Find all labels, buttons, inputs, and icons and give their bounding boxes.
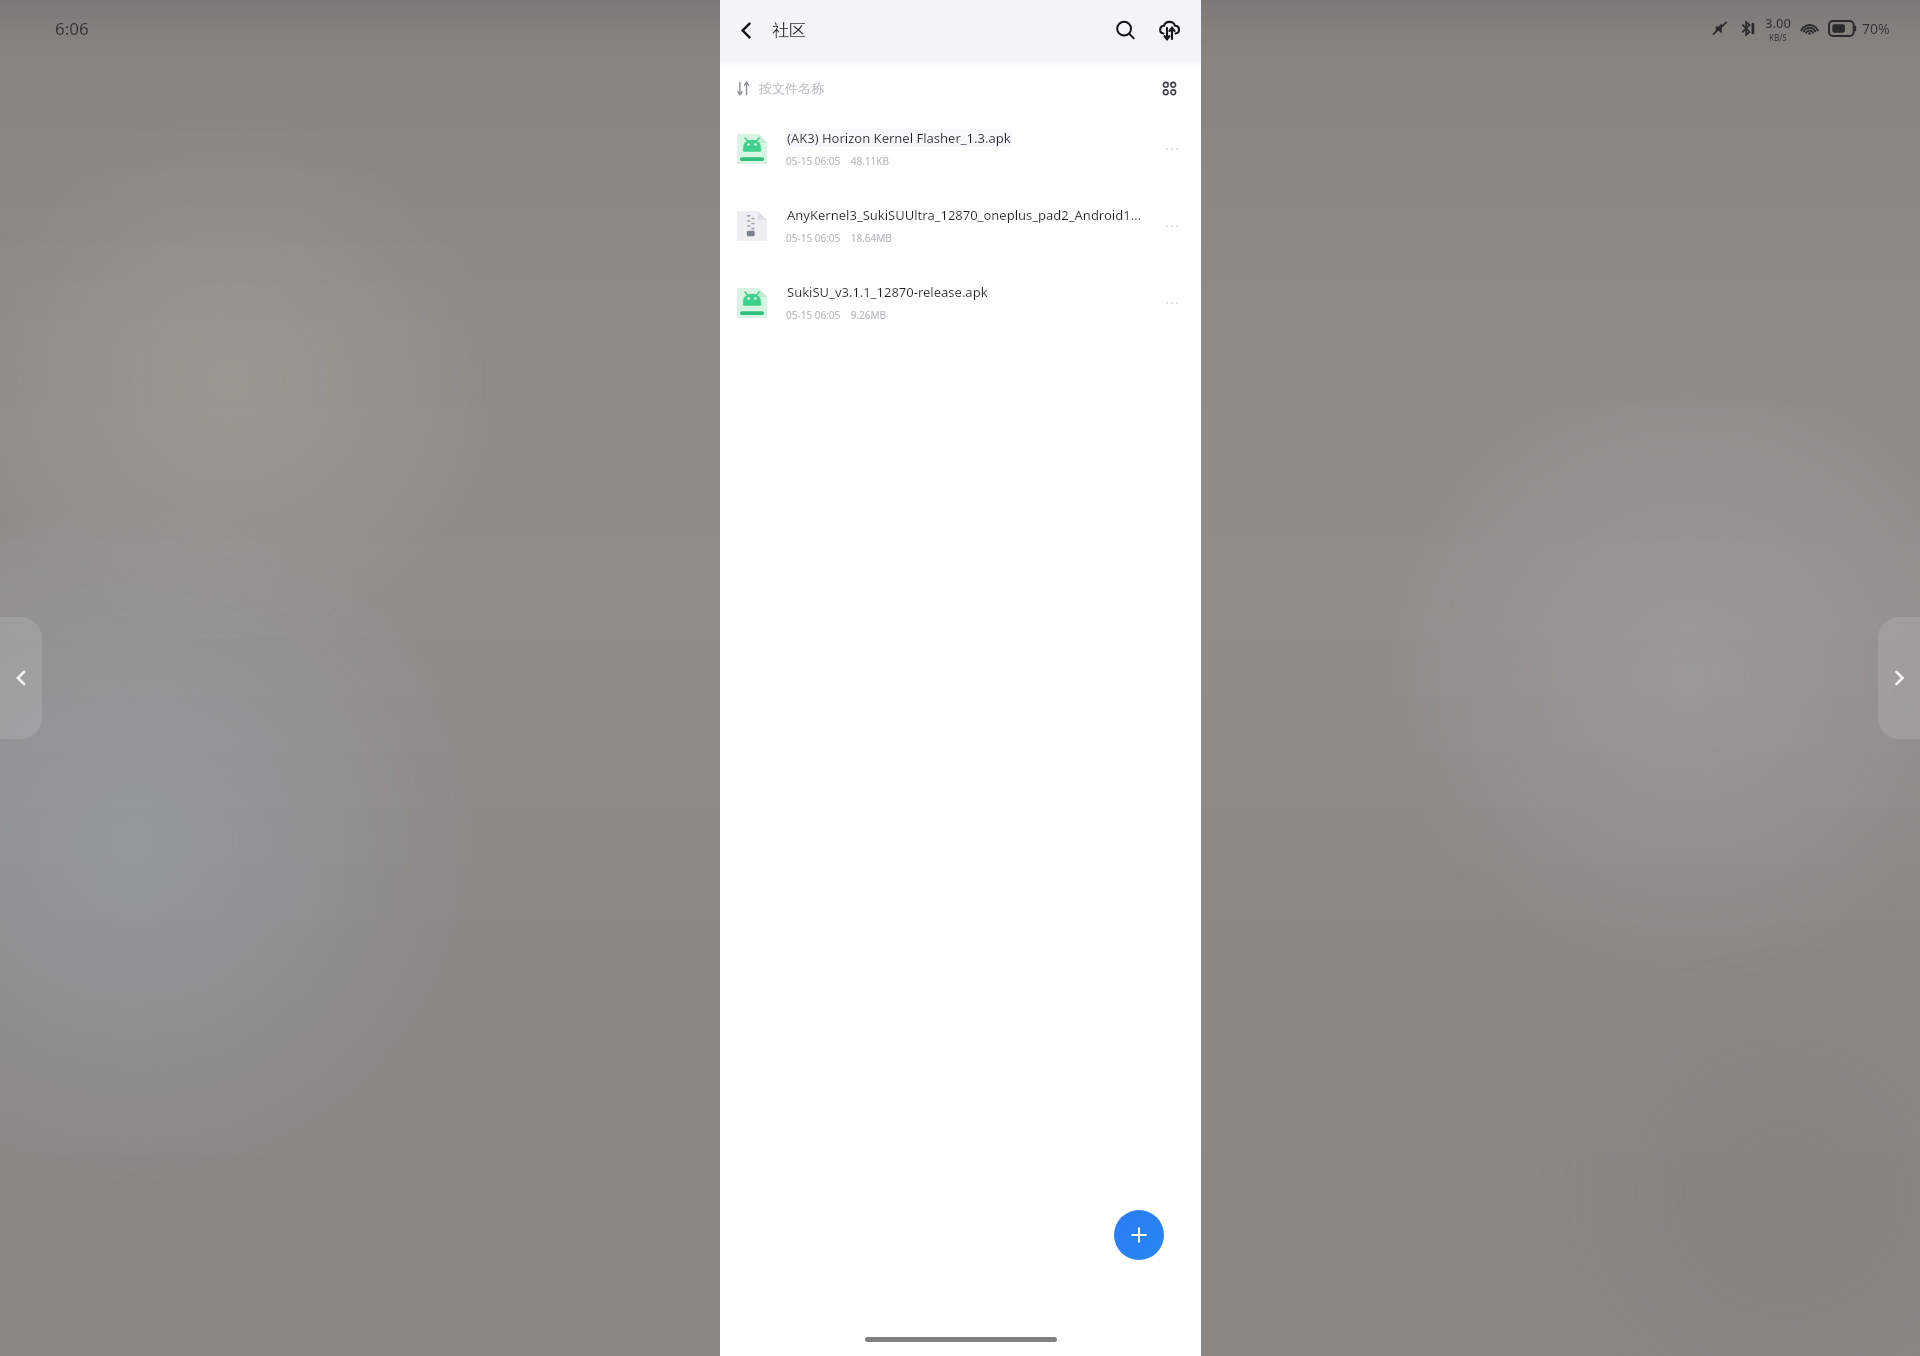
button[interactable]: (AK3) Horizon Kernel Flasher_1.3.apk (720, 110, 1201, 187)
staticText: 70% (1862, 19, 1890, 38)
button[interactable]: Back (0, 617, 42, 739)
staticText: SukiSU_v3.1.1_12870-release.apk (787, 283, 988, 301)
staticText: KB/S (1769, 32, 1787, 43)
button[interactable]: More options (1155, 286, 1189, 320)
button[interactable]: More options (1155, 209, 1189, 243)
staticText: 3.00 (1765, 14, 1791, 32)
button[interactable]: Transfers (1147, 8, 1191, 52)
staticText: 按文件名称 (759, 80, 824, 96)
staticText: (AK3) Horizon Kernel Flasher_1.3.apk (787, 129, 1011, 147)
button[interactable]: More options (1155, 132, 1189, 166)
staticText: 05-15 06:05 48.11KB (786, 154, 889, 168)
staticText: 社区 (772, 20, 806, 41)
staticText: 05-15 06:05 18.64MB (786, 231, 892, 245)
staticText: 6:06 (55, 17, 89, 40)
button[interactable]: SukiSU_v3.1.1_12870-release.apk (720, 264, 1201, 341)
button[interactable]: Back (726, 10, 766, 50)
button[interactable]: Add (1114, 1210, 1164, 1260)
button[interactable]: Grid view (1149, 68, 1189, 108)
button[interactable]: Search (1103, 8, 1147, 52)
staticText: AnyKernel3_SukiSUUltra_12870_oneplus_pad… (787, 206, 1146, 224)
button[interactable]: 按文件名称 (732, 76, 828, 100)
staticText: 05-15 06:05 9.26MB (786, 308, 887, 322)
button[interactable]: AnyKernel3_SukiSUUltra_12870_oneplus_pad… (720, 187, 1201, 264)
button[interactable]: Forward (1878, 617, 1920, 739)
